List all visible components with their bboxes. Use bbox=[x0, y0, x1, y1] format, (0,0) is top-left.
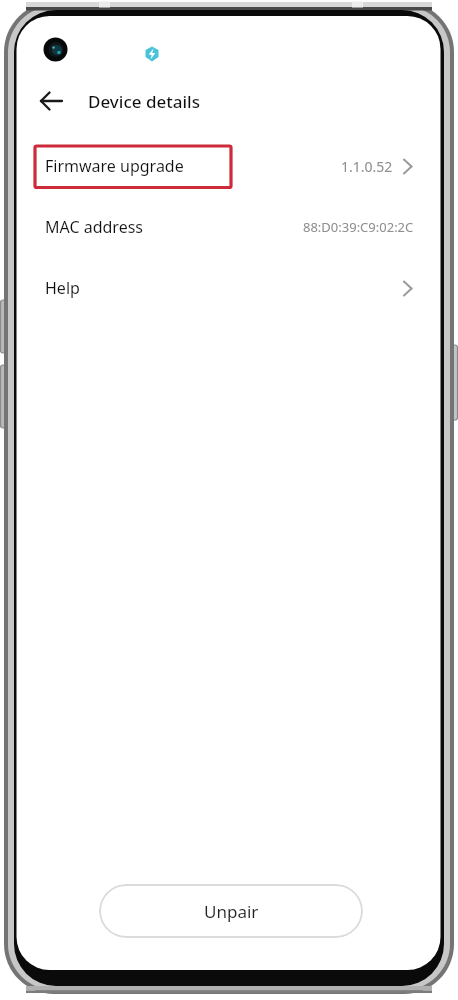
staticText: MAC address bbox=[45, 216, 143, 238]
staticText: Help bbox=[45, 277, 80, 299]
staticText: Firmware upgrade bbox=[45, 155, 184, 177]
staticText: 88:D0:39:C9:02:2C bbox=[303, 218, 414, 236]
staticText: 1.1.0.52 bbox=[341, 157, 393, 176]
button[interactable]: Firmware upgrade bbox=[16, 140, 440, 192]
staticText: Unpair bbox=[204, 900, 259, 923]
button[interactable]: Unpair bbox=[99, 884, 363, 938]
button[interactable]: Help bbox=[16, 262, 440, 314]
button[interactable]: MAC address bbox=[16, 201, 440, 253]
button[interactable] bbox=[30, 83, 72, 119]
staticText: Device details bbox=[88, 90, 200, 113]
